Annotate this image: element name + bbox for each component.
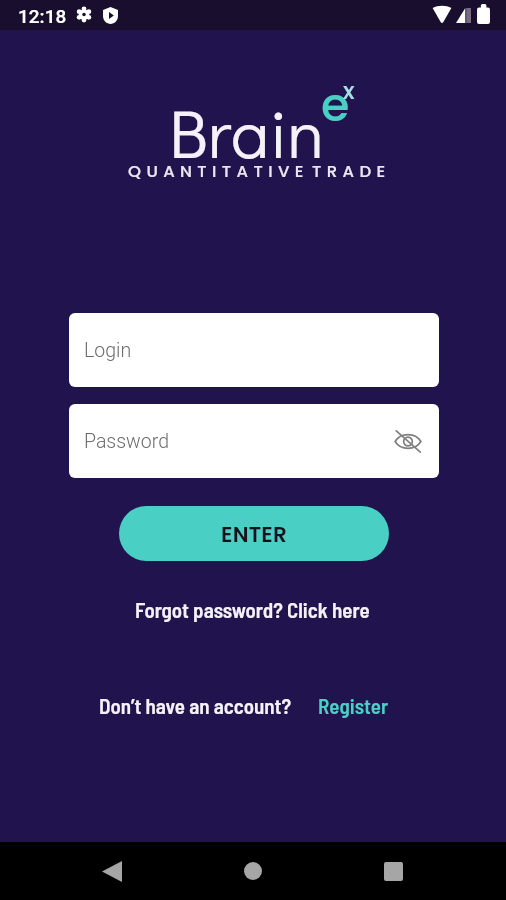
button[interactable]: Home <box>229 847 277 895</box>
staticText: Register <box>318 693 389 718</box>
button[interactable]: ENTER <box>119 506 389 561</box>
button[interactable]: Register <box>318 693 389 718</box>
button[interactable]: Recents <box>369 847 417 895</box>
staticText: x <box>343 75 355 107</box>
button[interactable]: Show password <box>391 424 425 458</box>
staticText: TRADE <box>312 160 391 183</box>
button[interactable]: Back <box>88 847 136 895</box>
button[interactable]: Password <box>69 404 439 478</box>
staticText: 12:18 <box>18 5 67 27</box>
staticText: Don’t have an account? <box>99 693 292 718</box>
staticText: e <box>321 73 350 137</box>
button[interactable]: Login <box>69 313 439 387</box>
staticText: QUANTITATIVE <box>128 160 309 183</box>
staticText: ENTER <box>221 519 287 549</box>
button[interactable]: Forgot password? Click here <box>131 595 374 624</box>
staticText: Forgot password? Click here <box>135 597 370 622</box>
staticText: Login <box>84 339 132 362</box>
staticText: Brain <box>169 87 324 176</box>
staticText: Password <box>84 430 169 453</box>
